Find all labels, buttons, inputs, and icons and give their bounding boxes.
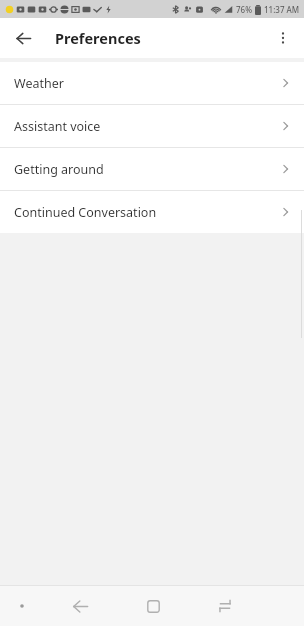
staticText: 11:37 AM — [264, 4, 300, 15]
button[interactable]: Back — [44, 586, 117, 626]
staticText: Weather — [14, 75, 278, 92]
button[interactable]: More options — [268, 23, 298, 53]
staticText: Getting around — [14, 161, 278, 178]
staticText: Continued Conversation — [14, 204, 278, 221]
button[interactable]: Continued Conversation — [0, 191, 304, 233]
button[interactable]: Hide navigation bar — [0, 586, 44, 626]
staticText: Assistant voice — [14, 118, 278, 135]
button[interactable]: Assistant voice — [0, 105, 304, 147]
button[interactable]: Getting around — [0, 148, 304, 190]
button[interactable]: Recent apps — [189, 586, 261, 626]
staticText: Preferences — [55, 28, 141, 48]
button[interactable]: Back — [8, 23, 38, 53]
button[interactable]: Home — [117, 586, 189, 626]
staticText: 76% — [236, 4, 252, 15]
button[interactable]: Weather — [0, 62, 304, 104]
